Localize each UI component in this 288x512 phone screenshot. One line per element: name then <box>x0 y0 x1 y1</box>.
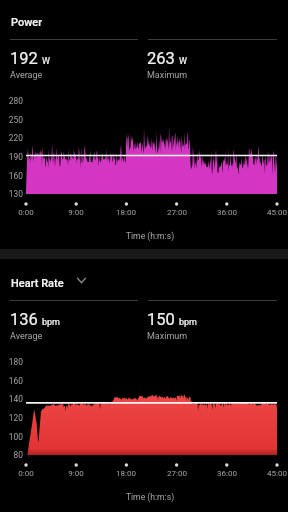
button[interactable]: 150 <box>147 310 276 340</box>
staticText: 160 <box>0 171 23 181</box>
staticText: 18:00 <box>106 208 146 217</box>
staticText: 263 <box>147 49 175 68</box>
button[interactable]: Collapse Heart Rate <box>71 273 92 294</box>
staticText: Time (h:m:s) <box>6 492 288 502</box>
staticText: 280 <box>0 96 23 106</box>
staticText: Time (h:m:s) <box>6 231 288 241</box>
staticText: 36:00 <box>207 469 247 478</box>
staticText: 130 <box>0 189 23 199</box>
staticText: W <box>42 56 50 67</box>
staticText: Power <box>11 16 43 29</box>
staticText: 140 <box>0 394 23 404</box>
staticText: 0:00 <box>6 208 46 217</box>
staticText: Average <box>10 70 43 81</box>
staticText: 180 <box>0 357 23 367</box>
staticText: 27:00 <box>157 208 197 217</box>
staticText: 27:00 <box>157 469 197 478</box>
staticText: Average <box>10 331 43 342</box>
staticText: 150 <box>147 310 175 329</box>
staticText: 18:00 <box>106 469 146 478</box>
staticText: 36:00 <box>207 208 247 217</box>
button[interactable]: Power <box>0 11 43 34</box>
button[interactable]: 136 <box>10 310 139 340</box>
staticText: bpm <box>42 317 60 328</box>
staticText: 100 <box>0 432 23 442</box>
button[interactable]: 192 <box>10 49 139 79</box>
staticText: 136 <box>10 310 38 329</box>
button[interactable]: 263 <box>147 49 276 79</box>
staticText: 80 <box>0 450 23 460</box>
staticText: 9:00 <box>56 469 96 478</box>
staticText: 250 <box>0 115 23 125</box>
staticText: bpm <box>179 317 197 328</box>
staticText: W <box>179 56 187 67</box>
staticText: 9:00 <box>56 208 96 217</box>
staticText: 160 <box>0 376 23 386</box>
staticText: 120 <box>0 413 23 423</box>
staticText: 0:00 <box>6 469 46 478</box>
staticText: 190 <box>0 152 23 162</box>
staticText: 45:00 <box>257 208 288 217</box>
staticText: Maximum <box>147 331 188 342</box>
button[interactable]: Heart Rate <box>0 272 92 295</box>
staticText: 45:00 <box>257 469 288 478</box>
staticText: 220 <box>0 133 23 143</box>
staticText: Heart Rate <box>11 277 64 290</box>
staticText: Maximum <box>147 70 188 81</box>
staticText: 192 <box>10 49 38 68</box>
